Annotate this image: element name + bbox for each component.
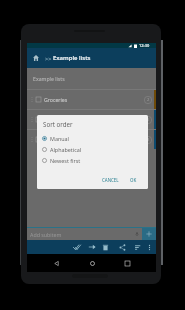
staticText: Newest first xyxy=(50,157,81,164)
staticText: Sort order xyxy=(43,120,73,128)
button[interactable]: Newest first xyxy=(37,155,148,166)
staticText: Add subitem xyxy=(30,231,62,238)
button[interactable]: Sort xyxy=(130,240,144,254)
staticText: Holiday xyxy=(44,136,63,143)
button[interactable]: Manual xyxy=(37,133,148,144)
button[interactable]: Back xyxy=(49,256,63,270)
button[interactable]: Delete xyxy=(98,240,112,254)
staticText: Manual xyxy=(50,135,69,142)
button[interactable]: Mark done xyxy=(70,240,84,254)
button[interactable]: Groceries xyxy=(27,90,156,109)
staticText: Work xyxy=(44,116,57,123)
staticText: Alphabetical xyxy=(50,146,82,153)
button[interactable]: Home xyxy=(85,256,99,270)
button[interactable]: Share xyxy=(115,240,129,254)
staticText: 3 xyxy=(147,137,150,143)
button[interactable]: Holiday xyxy=(27,130,156,149)
button[interactable]: Add xyxy=(142,228,156,240)
button[interactable]: Move xyxy=(85,240,99,254)
button[interactable]: More options xyxy=(142,240,156,254)
button[interactable]: CANCEL xyxy=(100,175,121,185)
staticText: Groceries xyxy=(44,96,68,103)
staticText: OK xyxy=(130,177,137,183)
button[interactable]: Home xyxy=(27,48,44,68)
button[interactable]: OK xyxy=(128,175,139,185)
staticText: 5 xyxy=(147,117,150,123)
button[interactable]: Recent apps xyxy=(120,256,134,270)
staticText: >> xyxy=(45,55,52,62)
staticText: 2 xyxy=(147,97,150,103)
staticText: 12:30 xyxy=(139,43,150,48)
staticText: Example lists xyxy=(33,75,65,82)
button[interactable]: Voice input xyxy=(132,228,141,240)
button[interactable]: Work xyxy=(27,110,156,129)
button[interactable]: Alphabetical xyxy=(37,144,148,155)
staticText: Example lists xyxy=(53,54,91,62)
staticText: CANCEL xyxy=(102,177,119,183)
